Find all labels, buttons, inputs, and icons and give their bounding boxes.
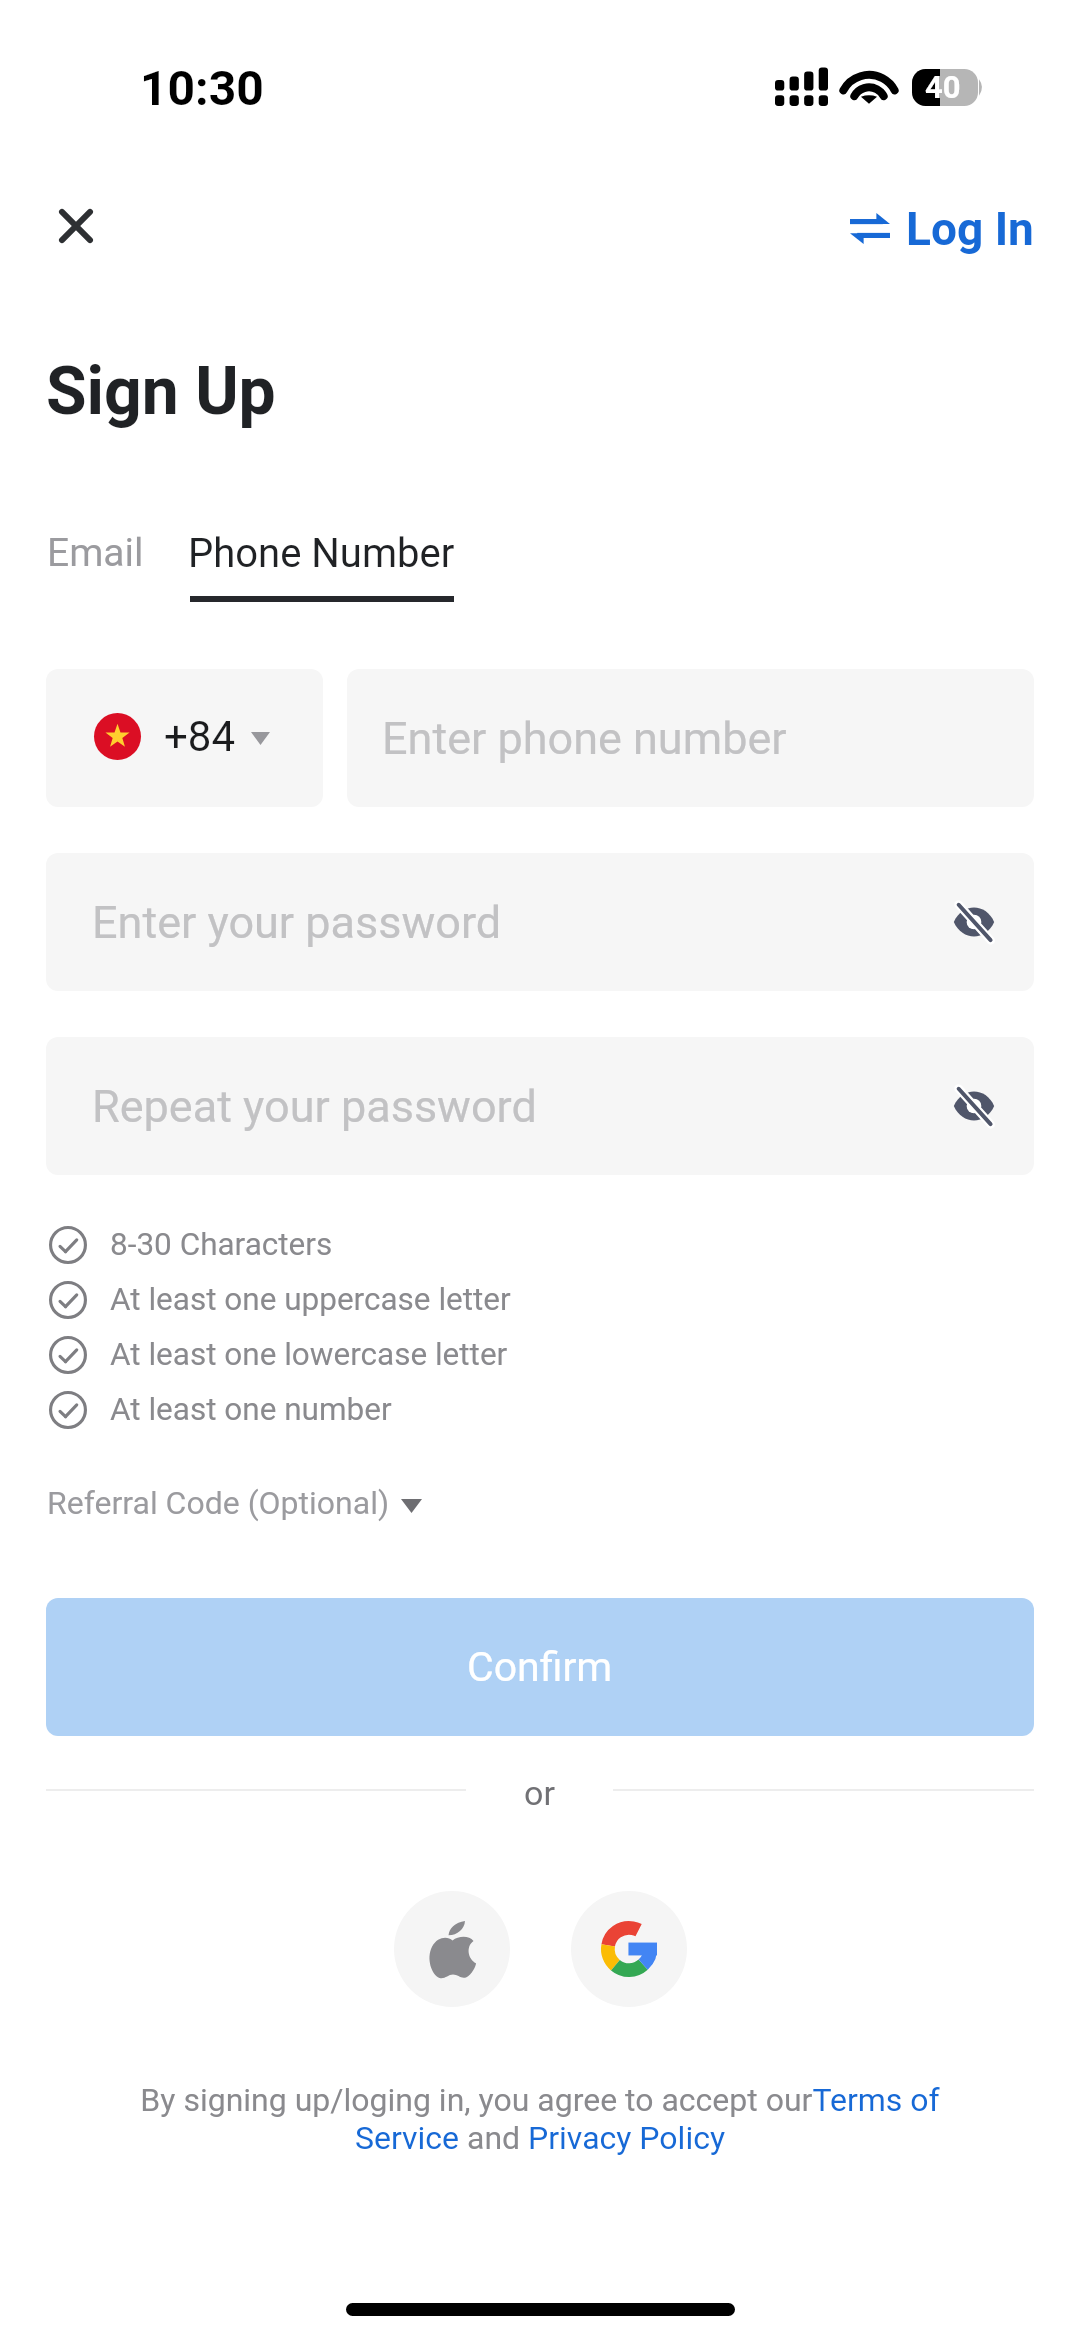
- staticText: +84: [164, 712, 236, 761]
- staticText: Repeat your password: [92, 1080, 537, 1133]
- staticText: By signing up/loging in, you agree to ac…: [134, 2081, 946, 2157]
- staticText: At least one uppercase letter: [110, 1281, 511, 1318]
- staticText: Enter phone number: [382, 712, 787, 765]
- button[interactable]: Email: [47, 530, 144, 576]
- button[interactable]: Confirm: [46, 1598, 1034, 1736]
- button[interactable]: Show password: [944, 892, 1004, 952]
- button[interactable]: Phone Number: [188, 530, 455, 602]
- staticText: At least one lowercase letter: [110, 1336, 508, 1373]
- staticText: 40: [925, 69, 961, 105]
- button[interactable]: Log In: [850, 202, 1034, 256]
- staticText: 10:30: [140, 60, 264, 116]
- staticText: At least one number: [110, 1391, 392, 1428]
- button[interactable]: Enter your password: [46, 853, 1034, 991]
- staticText: Sign Up: [46, 353, 276, 430]
- button[interactable]: Close: [28, 181, 124, 277]
- button[interactable]: Sign in with Google: [571, 1891, 687, 2007]
- button[interactable]: Sign in with Apple: [394, 1891, 510, 2007]
- staticText: Enter your password: [92, 896, 502, 949]
- button[interactable]: Show password: [944, 1076, 1004, 1136]
- button[interactable]: +84: [46, 669, 323, 807]
- staticText: 8-30 Characters: [110, 1226, 333, 1263]
- staticText: or: [524, 1773, 555, 1813]
- button[interactable]: Referral Code (Optional): [47, 1484, 422, 1522]
- button[interactable]: Repeat your password: [46, 1037, 1034, 1175]
- staticText: Confirm: [467, 1643, 613, 1691]
- staticText: Referral Code (Optional): [47, 1484, 390, 1522]
- button[interactable]: Enter phone number: [347, 669, 1034, 807]
- staticText: Phone Number: [188, 530, 455, 577]
- staticText: Log In: [906, 202, 1034, 256]
